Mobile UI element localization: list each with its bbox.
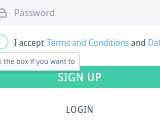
staticText: I accept [14,37,47,48]
staticText: LOGIN [66,104,94,115]
other: Password [0,7,8,19]
staticText: and [129,37,148,48]
staticText: Password [14,6,55,18]
button[interactable]: SIGN UP [0,66,160,88]
button[interactable]: Password [0,0,160,26]
button[interactable]: Accept terms checkbox [0,34,9,50]
button[interactable]: Data Privacy [148,37,160,48]
button[interactable]: LOGIN [58,101,102,118]
staticText: Check the box if you want to proceed [0,57,80,67]
staticText: SIGN UP [58,70,102,84]
button[interactable]: Terms and Conditions [47,37,129,48]
